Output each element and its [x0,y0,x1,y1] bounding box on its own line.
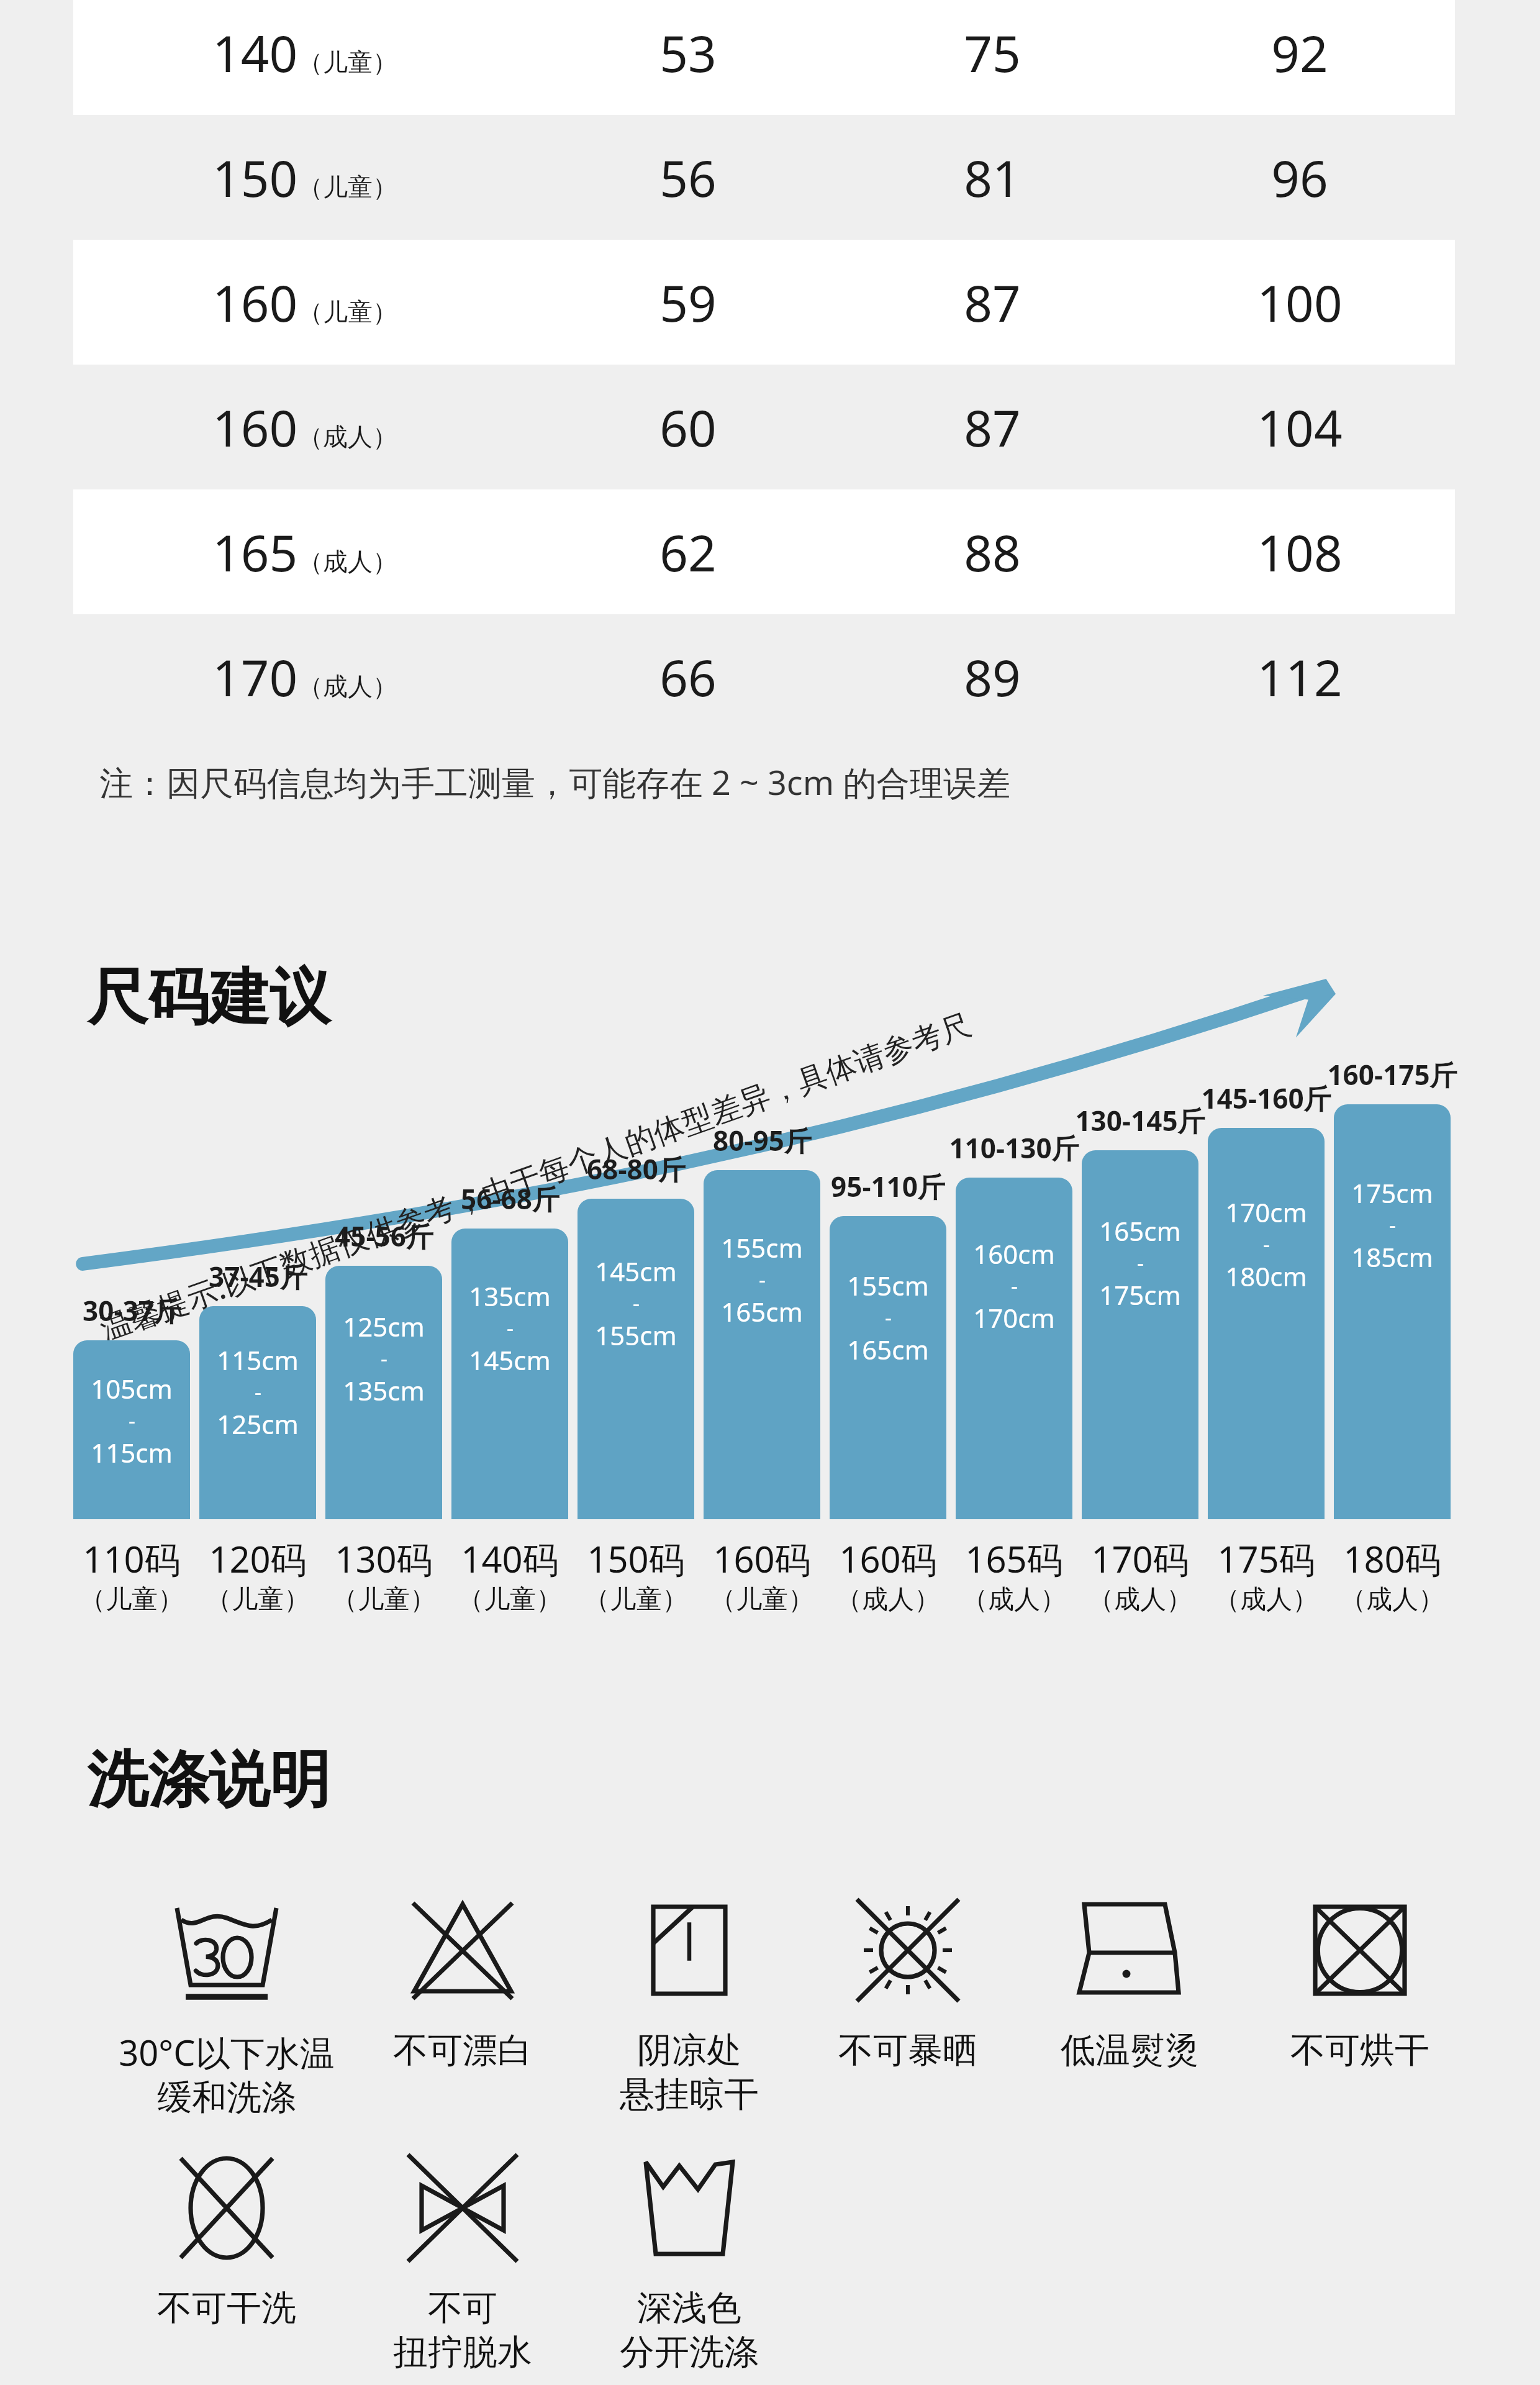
button[interactable]: Do not tumble dry [1236,1888,1484,2073]
staticText: 104 [1257,393,1343,461]
staticText: 145-160斤 [1201,1079,1331,1117]
staticText: 低温熨烫 [1061,2028,1200,2073]
button[interactable]: 165 [73,489,1455,614]
staticText: 87 [964,393,1021,461]
staticText: - [885,1303,892,1332]
staticText: 110码 [83,1534,181,1583]
staticText: 53 [659,19,717,86]
button[interactable]: 165cm [1082,1150,1198,1519]
staticText: 92 [1271,19,1328,86]
staticText: 130-145斤 [1075,1102,1205,1139]
button[interactable]: 160cm [956,1178,1072,1519]
button[interactable]: Wash colors separately [565,2146,813,2374]
staticText: 89 [964,643,1021,711]
staticText: 96 [1271,143,1328,211]
button[interactable]: 155cm [830,1216,946,1519]
staticText: （儿童） [584,1583,688,1616]
staticText: - [1389,1211,1396,1239]
button[interactable]: 115cm [199,1306,316,1519]
button[interactable]: 170cm [1208,1128,1325,1519]
staticText: 59 [659,268,717,336]
button[interactable]: Do not wring [338,2146,587,2374]
button[interactable]: 135cm [451,1229,568,1519]
staticText: 125cm [343,1309,425,1344]
staticText: 尺码建议 [87,960,330,1036]
staticText: （成人） [298,421,397,452]
staticText: （成人） [298,546,397,577]
button[interactable]: Iron low heat [1006,1888,1254,2073]
staticText: 130码 [335,1534,433,1583]
button[interactable]: 105cm [73,1340,190,1519]
staticText: （儿童） [298,47,397,78]
staticText: （儿童） [206,1583,310,1616]
button[interactable]: 160 [73,240,1455,365]
staticText: （儿童） [298,171,397,202]
button[interactable]: Hang dry in shade [565,1888,813,2117]
staticText: 56-68斤 [461,1180,559,1217]
staticText: （儿童） [298,296,397,327]
staticText: 不可 [428,2286,497,2330]
staticText: 88 [964,518,1021,586]
staticText: 165cm [1099,1213,1181,1248]
staticText: 155cm [595,1317,677,1353]
staticText: （成人） [298,671,397,702]
staticText: 不可干洗 [157,2286,296,2330]
staticText: 66 [659,643,717,711]
staticText: 105cm [91,1371,173,1406]
staticText: 160码 [713,1534,811,1583]
staticText: 165码 [965,1534,1063,1583]
button[interactable]: 175cm [1334,1104,1451,1519]
staticText: 135cm [469,1278,551,1314]
staticText: 140 [212,19,298,86]
button[interactable]: Do not bleach [338,1888,587,2073]
staticText: 185cm [1351,1239,1433,1274]
staticText: 37-45斤 [209,1258,307,1295]
staticText: 不可漂白 [393,2028,532,2073]
staticText: 62 [659,518,717,586]
button[interactable]: 155cm [704,1170,820,1519]
staticText: 60 [659,393,717,461]
staticText: 30°C以下水温 [119,2028,335,2076]
staticText: - [1011,1271,1018,1300]
staticText: 170码 [1091,1534,1189,1583]
staticText: - [1263,1230,1270,1258]
staticText: - [759,1265,766,1294]
button[interactable]: 160 [73,365,1455,489]
staticText: 120码 [209,1534,307,1583]
staticText: 170cm [1225,1194,1307,1230]
staticText: 165cm [847,1332,929,1367]
staticText: （儿童） [710,1583,814,1616]
button[interactable]: No direct sunlight [784,1888,1032,2073]
staticText: 150码 [587,1534,685,1583]
staticText: （儿童） [458,1583,562,1616]
staticText: 100 [1257,268,1343,336]
button[interactable]: 125cm [325,1266,442,1519]
button[interactable]: Do not dry clean [102,2146,351,2330]
staticText: 165 [212,518,298,586]
staticText: 170 [212,643,298,711]
staticText: 95-110斤 [831,1168,945,1205]
button[interactable]: 145cm [577,1199,694,1519]
staticText: （儿童） [79,1583,184,1616]
button[interactable]: 140 [73,0,1455,115]
staticText: 80-95斤 [713,1122,812,1159]
staticText: - [381,1344,387,1373]
staticText: 缓和洗涤 [157,2076,296,2120]
staticText: 115cm [217,1342,299,1378]
staticText: 180码 [1343,1534,1441,1583]
button[interactable]: 170 [73,614,1455,739]
button[interactable]: 150 [73,115,1455,240]
staticText: 75 [964,19,1021,86]
staticText: 180cm [1225,1258,1307,1294]
staticText: 160 [212,393,298,461]
staticText: 洗涤说明 [87,1742,330,1819]
staticText: 68-80斤 [587,1150,686,1188]
staticText: 不可烘干 [1290,2028,1429,2073]
staticText: 悬挂晾干 [620,2073,759,2117]
staticText: - [507,1314,514,1342]
staticText: 170cm [973,1300,1055,1335]
staticText: 81 [964,143,1021,211]
staticText: 160cm [973,1236,1055,1271]
staticText: 160码 [839,1534,937,1583]
button[interactable]: 30 degree gentle wash [102,1888,351,2120]
